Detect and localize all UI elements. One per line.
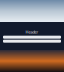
staticText: Header — [25, 29, 38, 35]
